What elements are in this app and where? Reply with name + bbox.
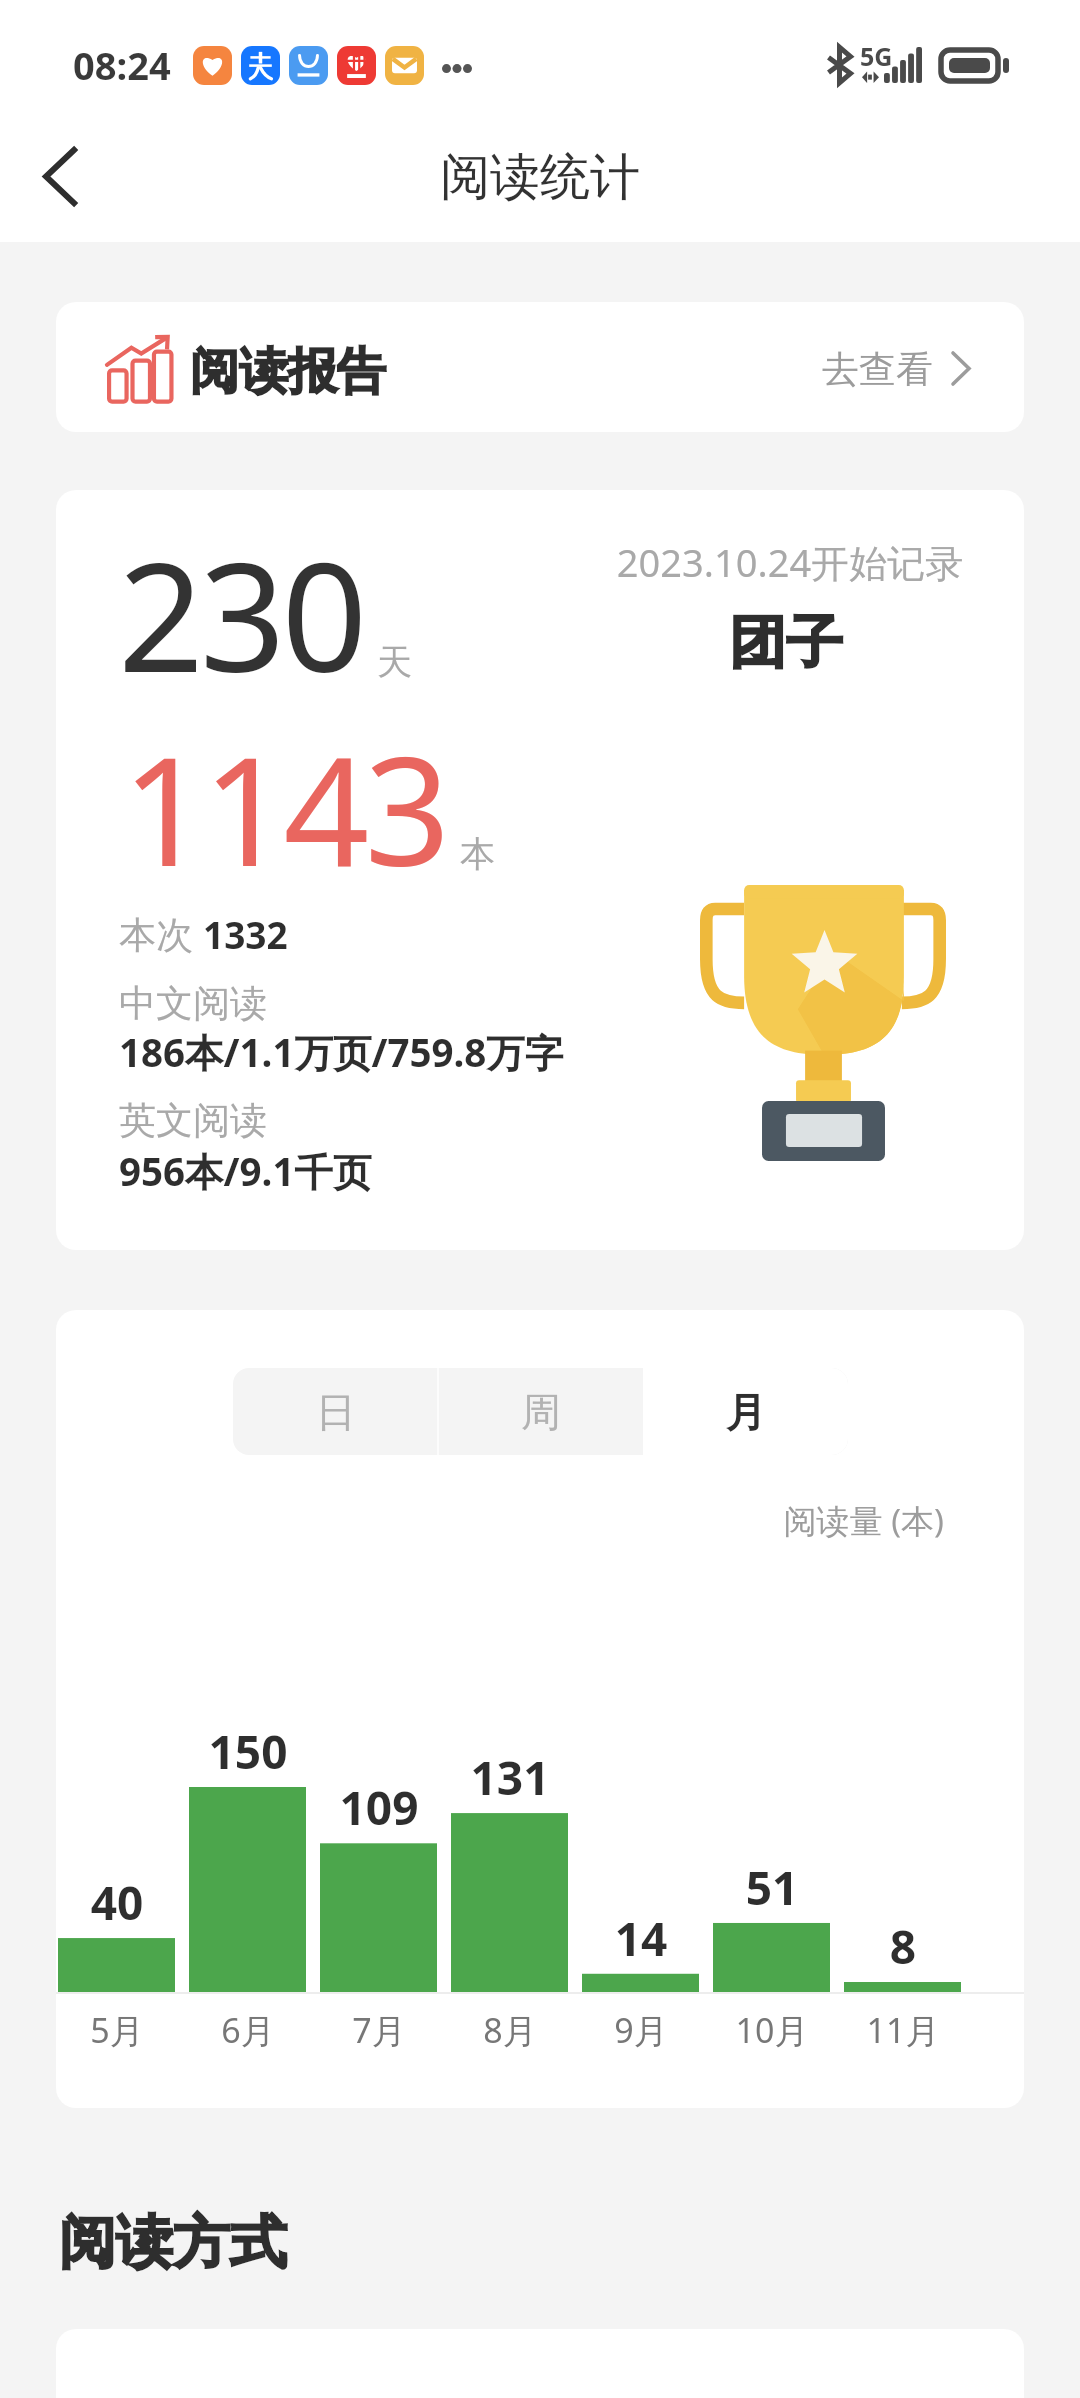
staticText: 团子 xyxy=(586,607,986,679)
staticText: 11月 xyxy=(823,2007,983,2053)
button[interactable]: 阅读报告 xyxy=(56,302,1024,432)
staticText: 150 xyxy=(168,1720,328,1783)
staticText: 8 xyxy=(823,1915,983,1978)
button[interactable]: 月 xyxy=(643,1368,848,1455)
staticText: 5G xyxy=(860,39,893,73)
staticText: 40 xyxy=(56,1871,197,1934)
staticText: 阅读报告 xyxy=(190,341,386,403)
staticText: 本次 xyxy=(119,908,203,959)
staticText: 08:24 xyxy=(73,39,171,91)
button[interactable]: 日 xyxy=(233,1368,438,1455)
staticText: 5月 xyxy=(56,2007,197,2053)
staticText: 51 xyxy=(692,1856,852,1919)
staticText: 阅读量 (本) xyxy=(544,1498,944,1543)
staticText: 中文阅读 xyxy=(119,980,267,1027)
staticText: 230 xyxy=(118,512,364,716)
button[interactable]: 周 xyxy=(438,1368,643,1455)
staticText: 7月 xyxy=(299,2007,459,2053)
staticText: 阅读方式 xyxy=(59,2207,287,2279)
staticText: 1143 xyxy=(122,706,446,910)
staticText: 14 xyxy=(561,1907,721,1970)
staticText: 6月 xyxy=(168,2007,328,2053)
staticText: 天 xyxy=(377,640,412,684)
staticText: 阅读统计 xyxy=(440,146,640,209)
staticText: 956本/9.1千页 xyxy=(119,1145,372,1198)
staticText: 131 xyxy=(430,1746,590,1809)
staticText: 英文阅读 xyxy=(119,1097,267,1144)
staticText: 8月 xyxy=(430,2007,590,2053)
staticText: 周 xyxy=(521,1387,561,1437)
staticText: 1332 xyxy=(203,909,288,959)
staticText: 186本/1.1万页/759.8万字 xyxy=(119,1026,564,1079)
staticText: 本 xyxy=(460,832,495,876)
staticText: 10月 xyxy=(692,2007,852,2053)
staticText: 2023.10.24开始记录 xyxy=(590,536,990,588)
staticText: 109 xyxy=(299,1776,459,1839)
staticText: 9月 xyxy=(561,2007,721,2053)
button[interactable]: Back xyxy=(22,138,98,214)
staticText: 日 xyxy=(316,1387,356,1437)
staticText: 去查看 xyxy=(822,346,933,393)
staticText: 月 xyxy=(726,1387,766,1437)
